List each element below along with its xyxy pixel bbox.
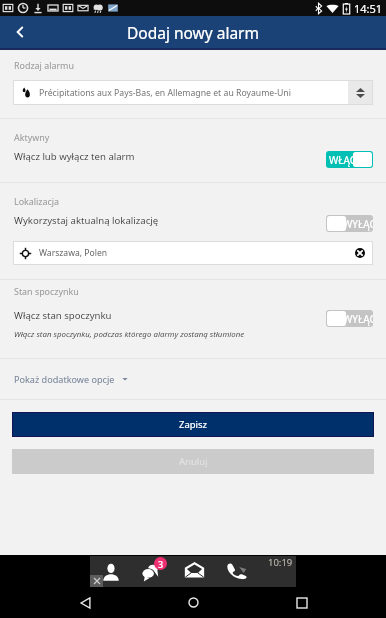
staticText: Rodzaj alarmu (14, 59, 74, 71)
staticText: WYŁĄCZ (343, 312, 373, 326)
staticText: Warszawa, Polen (39, 247, 347, 259)
staticText: Włącz stan spoczynku (14, 309, 326, 322)
button[interactable]: Messages, 3 unread (140, 560, 164, 584)
staticText: WŁĄCZ (329, 153, 362, 167)
button[interactable]: Choose alarm type (348, 80, 373, 105)
button[interactable]: Włącz lub wyłącz ten alarm (14, 148, 373, 165)
staticText: Wykorzystaj aktualną lokalizację (14, 214, 326, 227)
button[interactable]: Recents (278, 587, 326, 618)
staticText: 3 (158, 558, 164, 570)
staticText: Włącz lub wyłącz ten alarm (14, 150, 326, 163)
staticText: 14:51 (354, 1, 383, 16)
button[interactable]: Home (169, 587, 217, 618)
button[interactable]: Email (184, 561, 205, 579)
button[interactable]: Back (61, 587, 109, 618)
staticText: Zapisz (179, 418, 208, 431)
button[interactable]: Zapisz (12, 412, 374, 437)
staticText: Stan spoczynku (14, 285, 79, 297)
staticText: 10:19 (268, 556, 293, 569)
button[interactable]: Phone (226, 561, 248, 579)
button[interactable]: Wykorzystaj aktualną lokalizację (14, 212, 373, 229)
button[interactable]: Clear location (347, 241, 373, 265)
button[interactable]: Close (90, 575, 103, 587)
button[interactable]: Pokaż dodatkowe opcje (14, 359, 386, 399)
button[interactable]: Włącz stan spoczynku (14, 307, 373, 324)
staticText: Pokaż dodatkowe opcje (14, 373, 115, 385)
staticText: Anuluj (179, 455, 208, 468)
button[interactable]: Précipitations aux Pays-Bas, en Allemagn… (13, 80, 373, 105)
staticText: Włącz stan spoczynku, podczas którego al… (14, 329, 245, 340)
button[interactable]: Warszawa, Polen (13, 241, 373, 265)
staticText: Lokalizacja (14, 195, 60, 207)
staticText: Précipitations aux Pays-Bas, en Allemagn… (39, 87, 348, 99)
button[interactable]: Contacts (102, 563, 120, 581)
staticText: Aktywny (14, 131, 50, 143)
button[interactable]: Back (0, 16, 40, 48)
staticText: Dodaj nowy alarm (127, 22, 259, 43)
staticText: WYŁĄCZ (343, 217, 373, 231)
